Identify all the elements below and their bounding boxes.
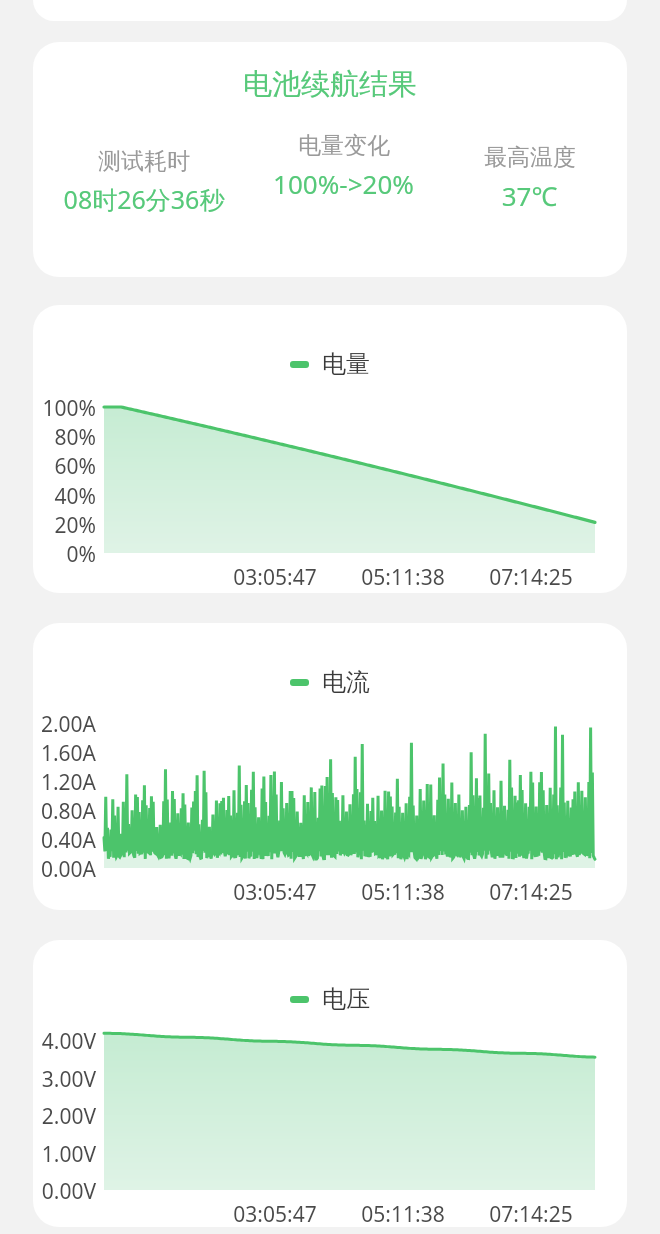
staticText: 2.00V [37, 1102, 96, 1131]
staticText: 电流 [322, 667, 370, 697]
staticText: 03:05:47 [211, 1200, 339, 1227]
staticText: 100%->20% [259, 166, 428, 201]
staticText: 1.20A [37, 768, 96, 797]
staticText: 0.40A [37, 826, 96, 855]
staticText: 08时26分36秒 [37, 182, 251, 216]
staticText: 40% [37, 482, 96, 511]
button[interactable]: 测试耗时 [33, 131, 255, 216]
staticText: 电量 [322, 349, 370, 379]
staticText: 05:11:38 [339, 563, 467, 592]
staticText: 电压 [322, 984, 370, 1014]
staticText: 电池续航结果 [33, 66, 627, 103]
staticText: 0.00A [37, 855, 96, 884]
staticText: 03:05:47 [211, 563, 339, 592]
button[interactable]: 电池续航结果 [33, 42, 627, 277]
staticText: 电量变化 [298, 131, 390, 160]
staticText: 05:11:38 [339, 878, 467, 907]
button[interactable]: 最高温度 [432, 131, 627, 213]
staticText: 100% [37, 394, 96, 423]
staticText: 最高温度 [484, 143, 576, 172]
staticText: 05:11:38 [339, 1200, 467, 1227]
staticText: 3.00V [37, 1065, 96, 1094]
staticText: 测试耗时 [98, 147, 190, 176]
staticText: 1.00V [37, 1140, 96, 1169]
staticText: 07:14:25 [467, 878, 595, 907]
staticText: 1.60A [37, 739, 96, 768]
staticText: 2.00A [37, 710, 96, 739]
staticText: 07:14:25 [467, 563, 595, 592]
button[interactable]: 电流 [33, 623, 627, 910]
staticText: 4.00V [37, 1027, 96, 1056]
staticText: 07:14:25 [467, 1200, 595, 1227]
staticText: 37℃ [436, 178, 623, 213]
button[interactable]: 电压 [33, 940, 627, 1227]
staticText: 0.80A [37, 797, 96, 826]
staticText: 80% [37, 423, 96, 452]
staticText: 03:05:47 [211, 878, 339, 907]
button[interactable]: 电量变化 [255, 131, 432, 201]
staticText: 0% [37, 540, 96, 569]
button[interactable]: 电量 [33, 305, 627, 593]
staticText: 60% [37, 452, 96, 481]
staticText: 20% [37, 511, 96, 540]
staticText: 0.00V [37, 1177, 96, 1206]
